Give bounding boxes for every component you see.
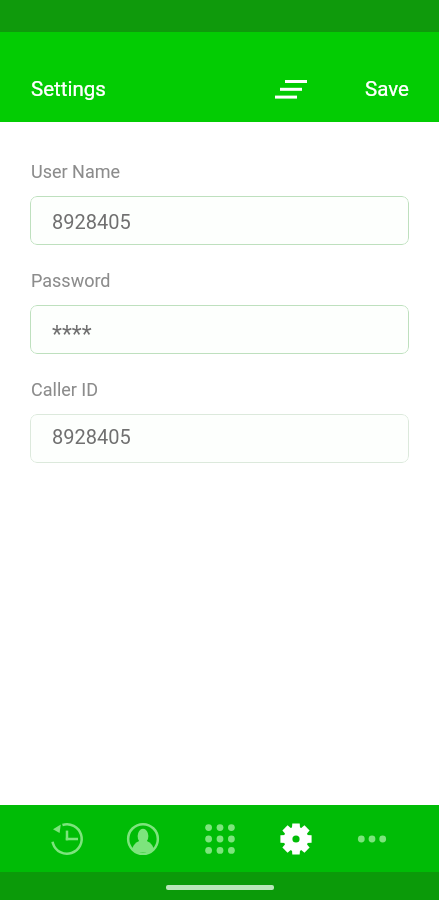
staticText: Caller ID xyxy=(31,379,99,400)
button[interactable]: Settings xyxy=(268,811,324,867)
staticText: 8928405 xyxy=(52,425,131,448)
button[interactable]: Dialpad xyxy=(192,811,248,867)
staticText: User Name xyxy=(31,161,121,182)
button[interactable]: Contacts xyxy=(115,811,171,867)
button[interactable]: 8928405 xyxy=(30,414,409,463)
staticText: 8928405 xyxy=(52,210,131,233)
button[interactable]: More options xyxy=(344,811,400,867)
button[interactable]: Sort xyxy=(263,66,319,112)
button[interactable]: **** xyxy=(30,305,409,354)
staticText: Settings xyxy=(31,77,106,101)
button[interactable]: Save xyxy=(352,68,422,110)
staticText: **** xyxy=(52,321,92,348)
button[interactable]: 8928405 xyxy=(30,196,409,245)
staticText: Save xyxy=(365,77,409,101)
button[interactable]: Recents xyxy=(39,811,95,867)
staticText: Password xyxy=(31,270,111,291)
